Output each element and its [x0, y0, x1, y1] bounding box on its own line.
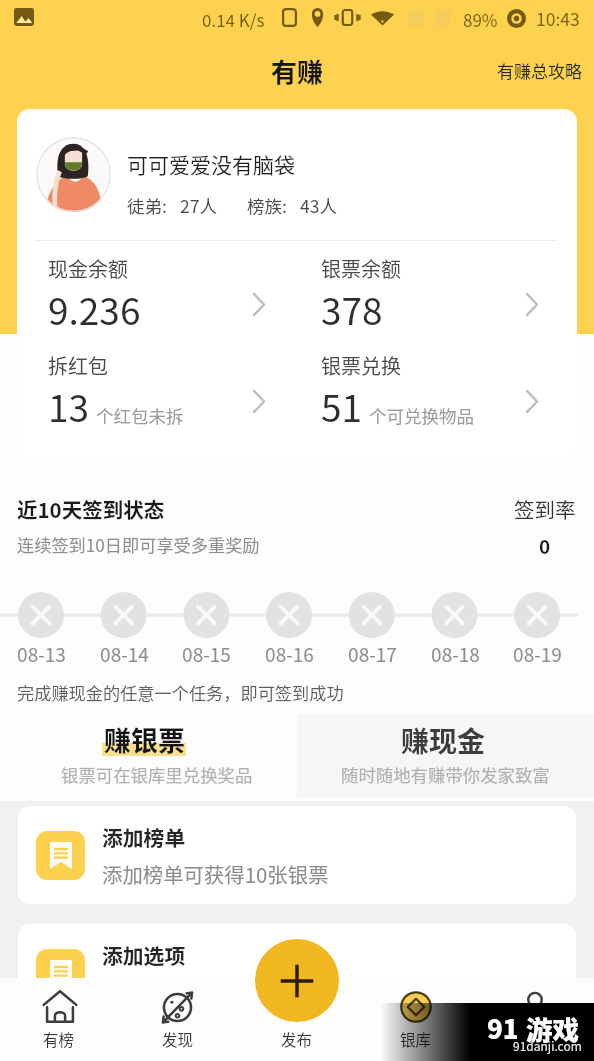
staticText: 51	[321, 379, 363, 433]
button[interactable]: 赚现金	[297, 714, 594, 797]
staticText: 91	[487, 1009, 519, 1047]
staticText: 个红包未拆	[96, 403, 184, 428]
button[interactable]: 添加榜单	[18, 806, 576, 904]
staticText: 现金余额	[48, 254, 128, 283]
staticText: 有赚	[271, 52, 324, 90]
staticText: 拆红包	[48, 351, 108, 380]
staticText: 添加榜单	[102, 822, 186, 852]
staticText: 徒弟:	[127, 193, 167, 218]
staticText: 0	[539, 532, 551, 560]
button[interactable]: 赚银票	[0, 714, 297, 797]
staticText: 赚银票	[104, 720, 185, 759]
staticText: 银票余额	[321, 254, 401, 283]
staticText: 43人	[300, 193, 337, 218]
staticText: 随时随地有赚带你发家致富	[341, 762, 550, 787]
button[interactable]: 银库	[356, 978, 475, 1061]
staticText: 赚现金	[401, 720, 486, 761]
staticText: 银票兑换	[321, 351, 401, 380]
staticText: 游戏	[526, 1009, 579, 1047]
staticText: 发布	[281, 1028, 313, 1050]
button[interactable]: 发布	[237, 978, 356, 1061]
staticText: 10:43	[536, 6, 580, 31]
staticText: 添加选项	[102, 940, 186, 970]
button[interactable]: 发现	[118, 978, 237, 1061]
button[interactable]: 银票余额	[297, 241, 577, 349]
staticText: 08-14	[100, 640, 149, 668]
button[interactable]: 拆红包	[17, 349, 297, 457]
staticText: 89%	[463, 7, 498, 32]
staticText: 08-16	[265, 640, 314, 668]
staticText: 添加榜单可获得10张银票	[102, 859, 329, 889]
staticText: 连续签到10日即可享受多重奖励	[17, 532, 260, 557]
staticText: 08-15	[182, 640, 231, 668]
button[interactable]: 添加选项	[18, 924, 576, 1022]
button[interactable]: 有赚总攻略	[493, 50, 586, 91]
staticText: 0.14 K/s	[202, 7, 265, 32]
staticText: 签到率	[514, 494, 576, 524]
staticText: 发现	[162, 1028, 194, 1050]
staticText: 有赚总攻略	[497, 58, 582, 83]
button[interactable]: 发布	[255, 939, 339, 1022]
staticText: 08-19	[513, 640, 562, 668]
staticText: 个可兑换物品	[369, 403, 474, 428]
button[interactable]: 我的	[475, 978, 594, 1061]
staticText: 08-17	[348, 640, 397, 668]
staticText: 银票可在银库里兑换奖品	[61, 762, 253, 787]
staticText: 银库	[400, 1028, 432, 1050]
staticText: 378	[321, 282, 383, 336]
button[interactable]: 现金余额	[17, 241, 297, 349]
staticText: 完成赚现金的任意一个任务，即可签到成功	[17, 680, 344, 705]
staticText: 榜族:	[247, 193, 287, 218]
staticText: 13	[48, 379, 90, 433]
button[interactable]: 银票兑换	[297, 349, 577, 457]
staticText: 有榜	[43, 1028, 75, 1050]
staticText: 9.236	[48, 282, 141, 336]
staticText: 我的	[519, 1028, 551, 1050]
staticText: 添加选项可获得10张银票	[102, 977, 329, 1007]
staticText: 可可爱爱没有脑袋	[127, 149, 295, 179]
staticText: 08-13	[17, 640, 66, 668]
staticText: 91danji.com	[513, 1037, 582, 1054]
staticText: 08-18	[431, 640, 480, 668]
staticText: 近10天签到状态	[17, 494, 165, 524]
button[interactable]: 有榜	[0, 978, 118, 1061]
staticText: 27人	[180, 193, 217, 218]
